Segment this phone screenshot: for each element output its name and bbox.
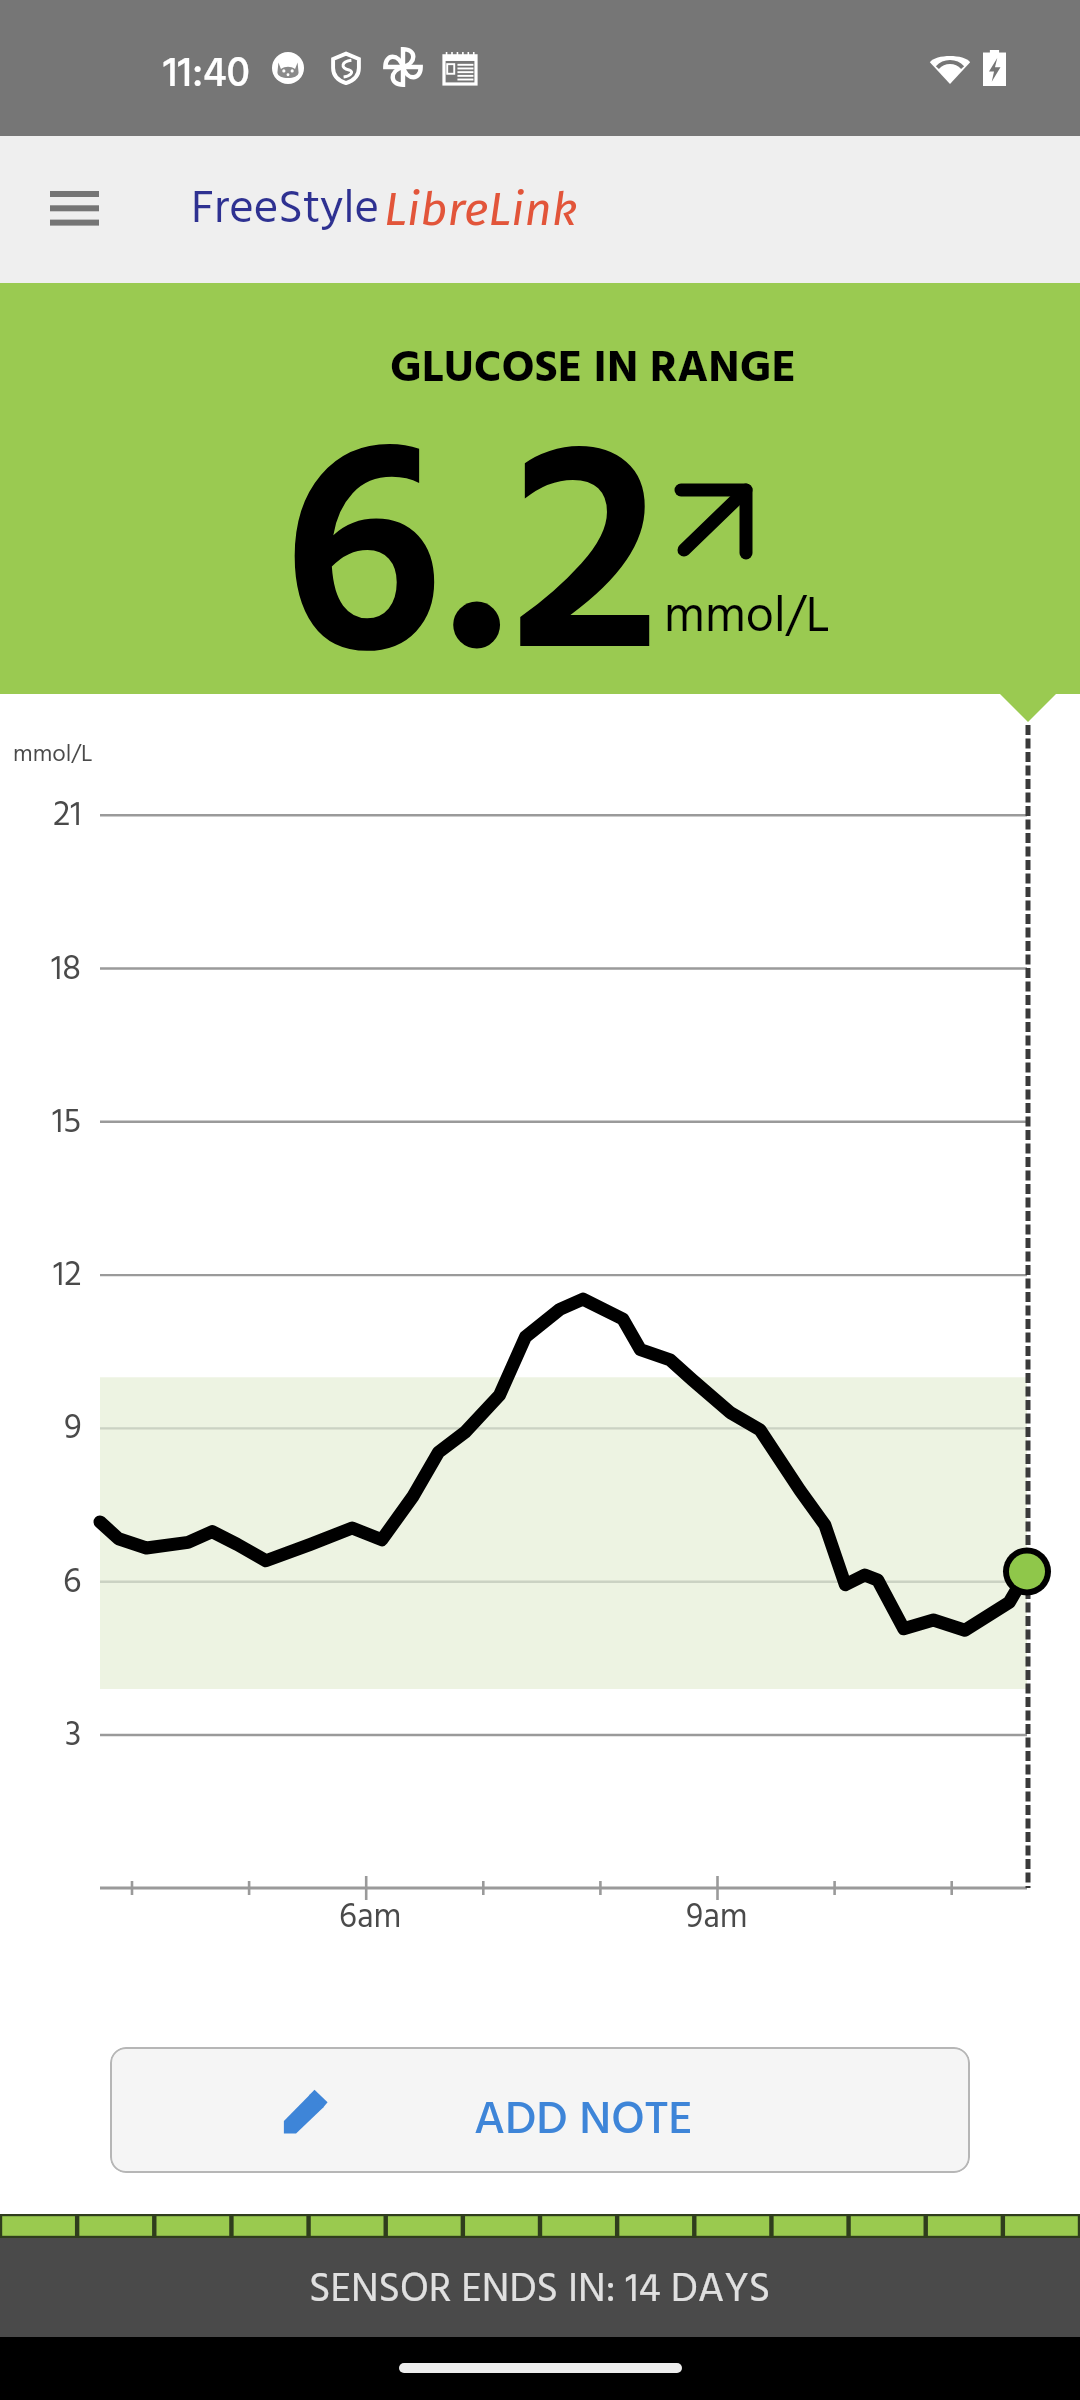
button[interactable]: ADD NOTE bbox=[110, 2047, 970, 2173]
staticText: 11:40 bbox=[163, 41, 250, 110]
staticText: FreeStyle bbox=[191, 172, 379, 247]
staticText: 12 bbox=[53, 1248, 82, 1304]
staticText: 6 bbox=[63, 1555, 82, 1611]
staticText: 15 bbox=[52, 1095, 82, 1151]
staticText: 18 bbox=[51, 942, 82, 998]
staticText: 3 bbox=[65, 1708, 82, 1764]
staticText: 6am bbox=[339, 1891, 402, 1945]
staticText: LibreLink bbox=[384, 181, 578, 237]
staticText: 9 bbox=[64, 1401, 82, 1457]
staticText: GLUCOSE IN RANGE bbox=[390, 334, 796, 406]
button[interactable]: Menu bbox=[30, 166, 118, 254]
staticText: 6.2 bbox=[282, 327, 661, 738]
staticText: SENSOR ENDS IN: 14 DAYS bbox=[309, 2258, 771, 2324]
staticText: 9am bbox=[686, 1891, 748, 1945]
staticText: mmol/L bbox=[13, 736, 93, 774]
staticText: ADD NOTE bbox=[474, 2083, 693, 2158]
staticText: mmol/L bbox=[664, 578, 830, 658]
staticText: 21 bbox=[53, 788, 82, 844]
